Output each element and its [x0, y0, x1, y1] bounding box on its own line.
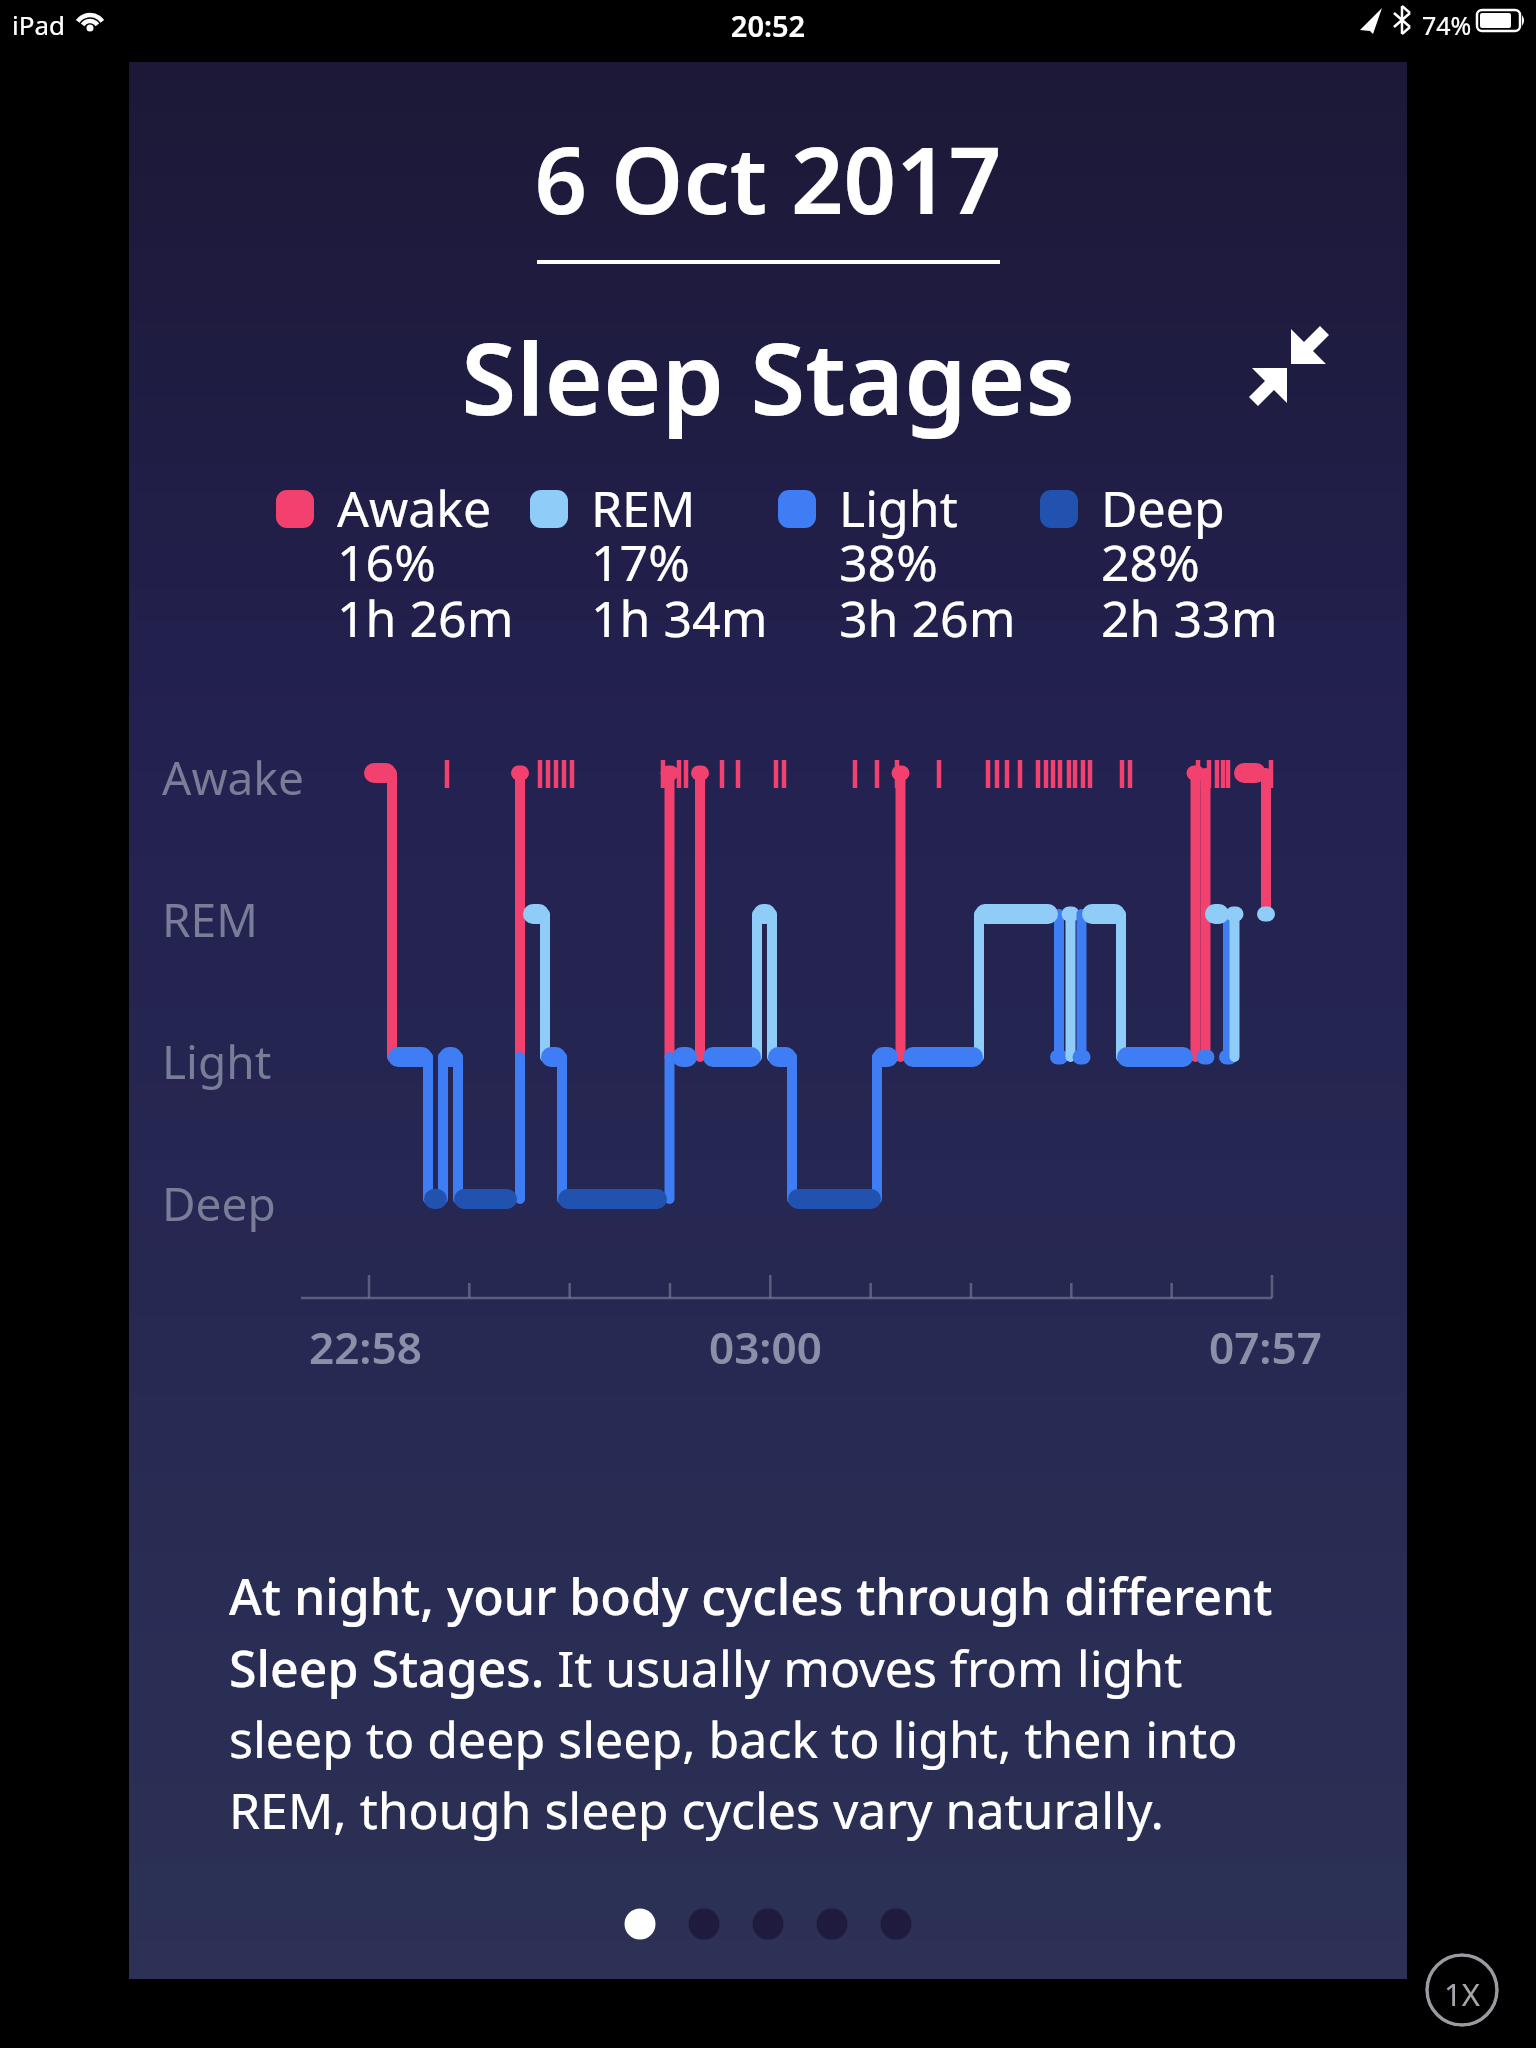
staticText: 38% [839, 528, 938, 596]
staticText: 1h 34m [591, 584, 768, 652]
staticText: 74% [1422, 8, 1472, 42]
staticText: 22:58 [309, 1317, 422, 1377]
staticText: Deep [162, 1172, 276, 1235]
staticText: 16% [337, 528, 436, 596]
staticText: Awake [162, 746, 304, 809]
staticText: 1h 26m [337, 584, 514, 652]
staticText: Light [839, 474, 958, 542]
button[interactable] [624, 1902, 914, 1946]
staticText: REM [162, 888, 258, 951]
staticText: Deep [1101, 474, 1225, 542]
staticText: 07:57 [1209, 1317, 1322, 1377]
staticText: 03:00 [709, 1317, 822, 1377]
staticText: Light [162, 1030, 272, 1093]
staticText: REM [591, 474, 696, 542]
staticText: At night, your body cycles through diffe… [229, 1562, 1273, 1843]
staticText: 3h 26m [839, 584, 1016, 652]
staticText: 28% [1101, 528, 1200, 596]
button[interactable] [1257, 315, 1343, 401]
staticText: 2h 33m [1101, 584, 1278, 652]
staticText: 20:52 [0, 6, 1536, 45]
staticText: Sleep Stages [129, 308, 1407, 444]
staticText: iPad [12, 7, 66, 42]
staticText: 6 Oct 2017 [129, 116, 1407, 241]
staticText: 17% [591, 528, 690, 596]
button[interactable]: 1X [1425, 1953, 1499, 2027]
staticText: 1X [1425, 1973, 1499, 2015]
staticText: Awake [337, 474, 492, 542]
